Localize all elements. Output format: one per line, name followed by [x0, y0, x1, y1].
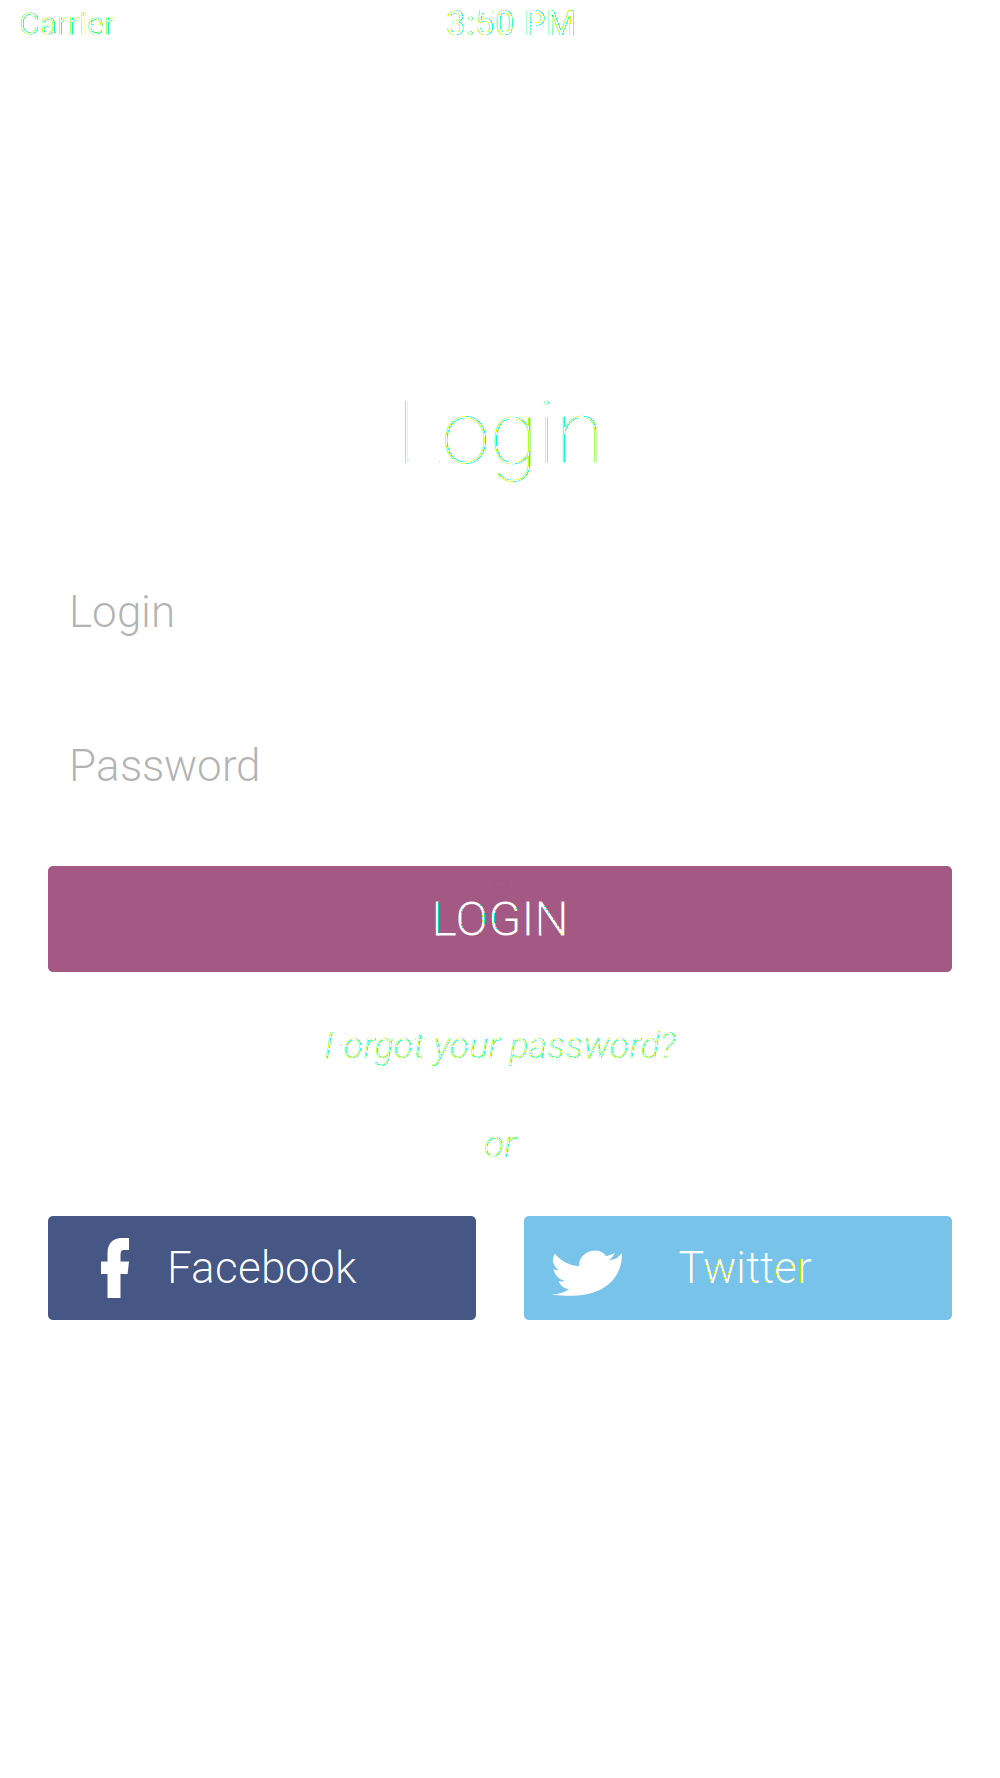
staticText: Facebook — [167, 1242, 357, 1294]
staticText: Login — [396, 381, 603, 484]
button[interactable]: Forgot your password? — [250, 1020, 750, 1072]
staticText: 3:50 PM — [446, 3, 576, 44]
staticText: LOGIN — [431, 891, 568, 947]
button[interactable]: Twitter — [524, 1216, 952, 1320]
staticText: Login — [69, 586, 175, 638]
button[interactable]: Close — [24, 52, 124, 152]
staticText: Password — [69, 740, 260, 792]
staticText: Forgot your password? — [324, 1025, 675, 1067]
staticText: Twitter — [678, 1242, 812, 1294]
staticText: Carrier — [19, 5, 115, 42]
button[interactable]: Facebook — [48, 1216, 476, 1320]
button[interactable]: LOGIN — [48, 866, 952, 972]
staticText: or — [484, 1122, 516, 1166]
